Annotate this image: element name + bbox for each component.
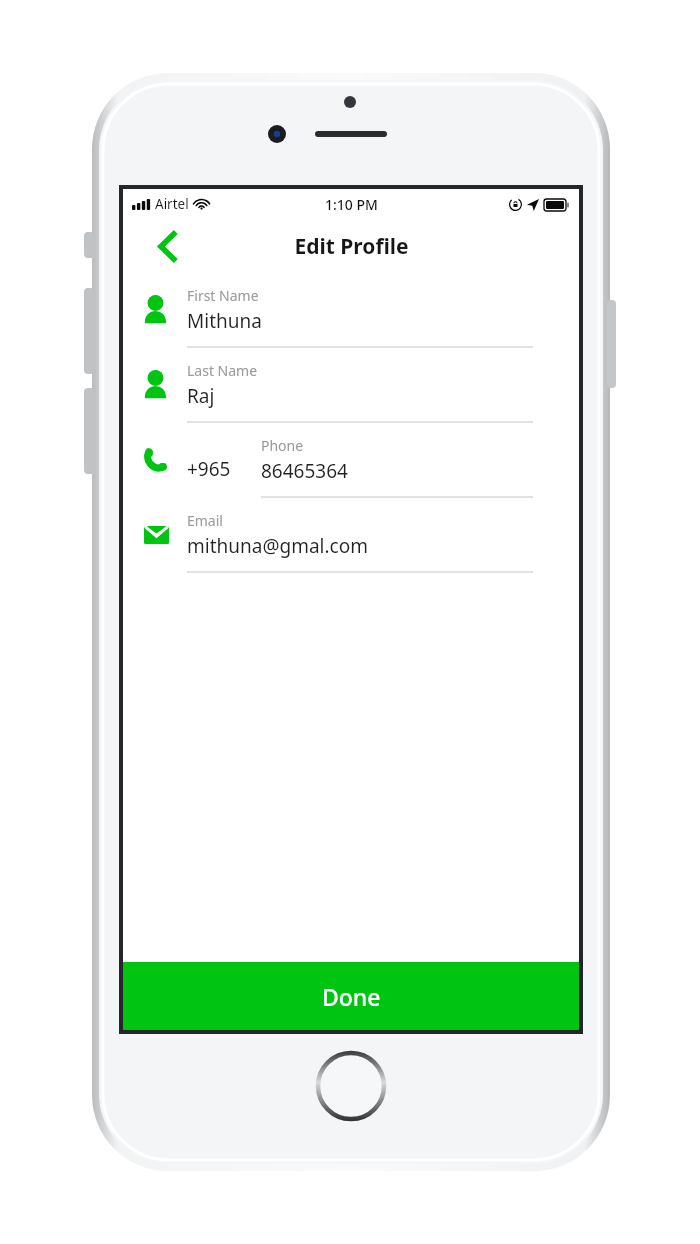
button[interactable]: First Name (123, 273, 579, 348)
staticText: First Name (187, 286, 259, 305)
staticText: Edit Profile (294, 232, 409, 261)
button[interactable]: Email (123, 498, 579, 573)
staticText: Phone (261, 436, 304, 455)
staticText: Last Name (187, 361, 258, 380)
button[interactable]: Last Name (123, 348, 579, 423)
staticText: 1:10 PM (325, 195, 378, 214)
staticText: mithuna@gmal.com (187, 533, 368, 559)
staticText: Airtel (155, 195, 189, 213)
staticText: Mithuna (187, 308, 262, 334)
staticText: Raj (187, 383, 215, 409)
button[interactable]: Done (123, 962, 579, 1030)
button[interactable]: Back (147, 226, 187, 266)
staticText: Email (187, 511, 223, 530)
staticText: 86465364 (261, 458, 348, 484)
staticText: Done (322, 981, 381, 1012)
staticText: +965 (187, 456, 231, 482)
button[interactable]: +965 (123, 423, 579, 498)
